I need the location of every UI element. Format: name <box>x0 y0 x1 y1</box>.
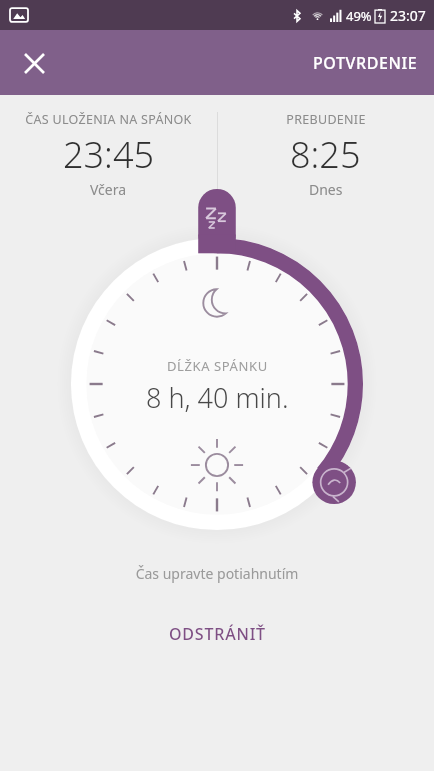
staticText: Čas upravte potiahnutím <box>0 564 434 583</box>
staticText: ODSTRÁNIŤ <box>169 623 266 645</box>
button[interactable]: POTVRDENIE <box>303 42 428 84</box>
staticText: Včera <box>90 180 127 199</box>
button[interactable]: ČAS ULOŽENIA NA SPÁNOK <box>0 95 217 200</box>
staticText: PREBUDENIE <box>286 111 366 128</box>
staticText: 23:45 <box>63 130 155 179</box>
button[interactable]: Zavrieť <box>10 39 58 87</box>
button[interactable]: Ciferník spánku <box>52 219 382 549</box>
staticText: Dnes <box>309 180 343 199</box>
staticText: 8:25 <box>290 130 361 179</box>
staticText: DĹŽKA SPÁNKU <box>167 357 268 375</box>
button[interactable]: ODSTRÁNIŤ <box>149 613 286 655</box>
staticText: 49% <box>346 7 372 25</box>
staticText: ČAS ULOŽENIA NA SPÁNOK <box>25 111 192 128</box>
staticText: 23:07 <box>390 6 426 25</box>
staticText: POTVRDENIE <box>313 52 418 74</box>
staticText: 8 h, 40 min. <box>146 379 289 416</box>
button[interactable]: PREBUDENIE <box>217 95 434 200</box>
